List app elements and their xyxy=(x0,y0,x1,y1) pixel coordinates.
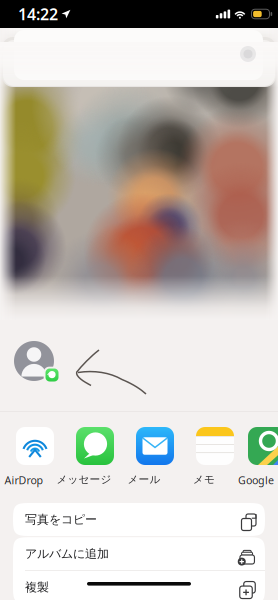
staticText: メッセージ xyxy=(56,473,111,486)
staticText: メモ xyxy=(193,473,215,486)
button[interactable]: メモ xyxy=(196,427,234,485)
button[interactable]: メッセージ xyxy=(76,427,114,485)
button[interactable]: 複製 xyxy=(13,571,265,600)
staticText: Google xyxy=(238,473,274,487)
staticText: 14:22 xyxy=(18,3,58,25)
button[interactable]: アルバムに追加 xyxy=(13,537,265,570)
button[interactable]: 写真をコピー xyxy=(13,503,265,536)
button[interactable]: メール xyxy=(136,427,174,485)
button[interactable]: AirDrop xyxy=(16,427,54,485)
staticText: 複製 xyxy=(25,580,49,595)
staticText: 写真をコピー xyxy=(25,512,97,527)
button[interactable]: Google xyxy=(248,427,278,485)
staticText: アルバムに追加 xyxy=(25,546,109,561)
staticText: メール xyxy=(127,473,160,486)
staticText: AirDrop xyxy=(4,473,43,487)
